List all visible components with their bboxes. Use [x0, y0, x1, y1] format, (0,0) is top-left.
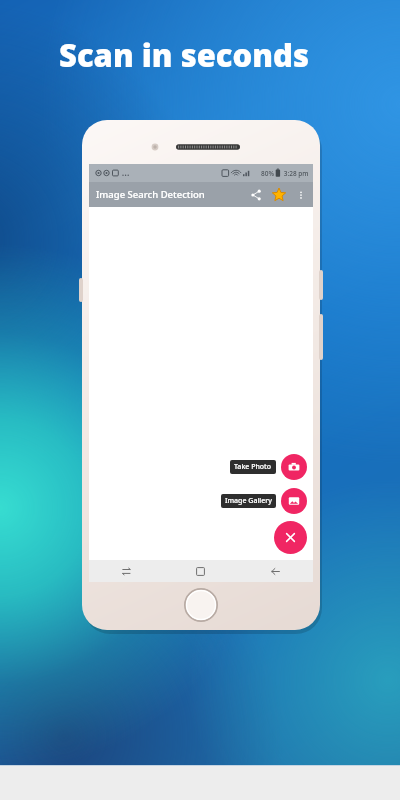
button[interactable]: Image Gallery: [281, 488, 307, 514]
staticText: 3:28 pm: [282, 169, 309, 178]
button[interactable]: Image Gallery: [221, 494, 276, 508]
staticText: Image Gallery: [225, 496, 272, 506]
staticText: Scan in seconds: [59, 34, 310, 76]
button[interactable]: Share: [245, 184, 267, 206]
button[interactable]: Back: [238, 560, 313, 582]
button[interactable]: Recents: [89, 560, 163, 582]
staticText: Image Search Detection: [96, 188, 205, 201]
button[interactable]: Take Photo: [281, 454, 307, 480]
button[interactable]: Take Photo: [230, 460, 276, 474]
button[interactable]: More options: [291, 185, 311, 205]
staticText: Take Photo: [234, 462, 272, 472]
button[interactable]: Close menu: [274, 521, 307, 554]
staticText: 80%: [261, 169, 274, 178]
button[interactable]: Favorite: [267, 183, 291, 207]
button[interactable]: Home: [163, 560, 238, 582]
